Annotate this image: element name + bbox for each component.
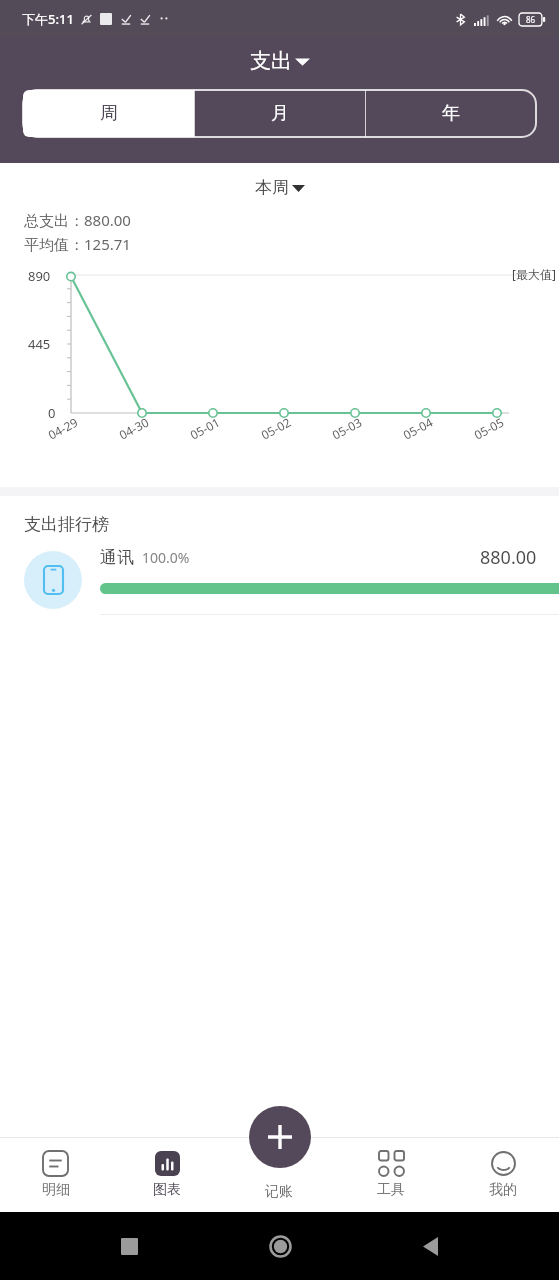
staticText: 本周 <box>255 177 289 198</box>
staticText: 0 <box>48 404 56 422</box>
button[interactable]: 记账 新增 <box>249 1106 311 1168</box>
button[interactable]: 周 <box>23 90 194 137</box>
staticText: 我的 <box>489 1181 517 1199</box>
button[interactable]: 明细 <box>0 1137 111 1212</box>
staticText: 04-29 <box>45 413 81 443</box>
staticText: 明细 <box>42 1181 70 1199</box>
button[interactable]: 工具 <box>335 1137 447 1212</box>
staticText: 图表 <box>153 1181 181 1199</box>
button[interactable]: 支出 <box>250 48 310 74</box>
button[interactable]: 年 <box>366 90 536 137</box>
button[interactable]: 本周 <box>255 177 305 198</box>
staticText: 平均值：125.71 <box>24 234 131 254</box>
staticText: 总支出：880.00 <box>24 210 131 230</box>
staticText: 05-03 <box>329 413 365 443</box>
staticText: 05-04 <box>400 413 436 443</box>
button[interactable]: 我的 <box>447 1137 559 1212</box>
staticText: 通讯 <box>100 547 134 568</box>
staticText: 100.0% <box>142 548 190 567</box>
staticText: 86 <box>526 14 536 25</box>
button[interactable]: 通讯 <box>0 543 559 623</box>
staticText: 月 <box>271 102 289 125</box>
button[interactable]: 图表 <box>111 1137 223 1212</box>
staticText: 下午5:11 <box>22 10 74 28</box>
button[interactable]: Home <box>258 1224 302 1268</box>
staticText: 445 <box>28 335 51 353</box>
staticText: 记账 <box>265 1183 293 1201</box>
staticText: 年 <box>442 102 460 125</box>
staticText: 05-05 <box>471 413 507 443</box>
staticText: 05-02 <box>258 413 294 443</box>
staticText: 支出排行榜 <box>24 514 109 535</box>
button[interactable]: Back <box>408 1224 452 1268</box>
staticText: 工具 <box>377 1181 405 1199</box>
button[interactable]: 记账 <box>223 1137 335 1212</box>
button[interactable]: Recents <box>107 1224 151 1268</box>
staticText: 支出 <box>250 48 292 74</box>
staticText: 890 <box>28 267 51 285</box>
staticText: 周 <box>100 102 118 125</box>
staticText: 04-30 <box>116 413 152 443</box>
staticText: [最大值] <box>512 266 556 282</box>
staticText: 05-01 <box>187 413 223 443</box>
staticText: 880.00 <box>480 545 537 570</box>
button[interactable]: 月 <box>195 90 365 137</box>
